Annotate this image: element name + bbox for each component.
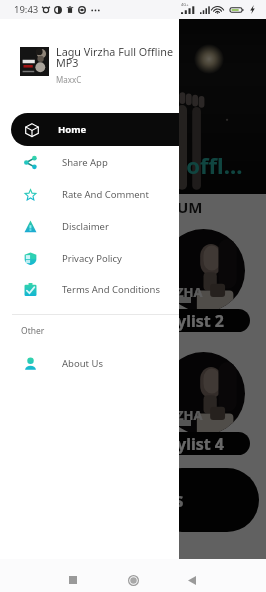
staticText: ylist 2 — [177, 310, 224, 332]
button[interactable]: Privacy Policy — [0, 243, 179, 274]
button[interactable]: Rate And Comment — [0, 179, 179, 210]
staticText: Rate And Comment — [62, 188, 149, 201]
staticText: MaxxC — [56, 74, 82, 85]
staticText: UM — [177, 197, 203, 217]
staticText: Lagu Virzha Full Offline MP3 — [56, 44, 179, 70]
staticText: Home — [58, 123, 87, 136]
staticText: Share App — [62, 156, 108, 169]
staticText: ylist 4 — [177, 433, 224, 455]
button[interactable]: Home — [11, 113, 179, 146]
staticText: Disclaimer — [62, 220, 109, 233]
staticText: ZHA — [176, 283, 203, 301]
button[interactable]: Recent apps — [58, 565, 88, 592]
staticText: s — [174, 487, 184, 513]
staticText: Terms And Conditions — [62, 283, 161, 296]
button[interactable]: Home — [118, 565, 148, 592]
button[interactable]: About Us — [0, 348, 179, 379]
staticText: Privacy Policy — [62, 252, 122, 265]
staticText: 4G+ — [181, 2, 189, 7]
button[interactable]: Back — [177, 565, 207, 592]
button[interactable]: Disclaimer — [0, 211, 179, 242]
staticText: About Us — [62, 357, 103, 370]
staticText: l offl... — [174, 150, 243, 180]
button[interactable]: Terms And Conditions — [0, 274, 179, 305]
staticText: ZHA — [176, 406, 203, 424]
button[interactable]: Share App — [0, 147, 179, 178]
staticText: 19:43 — [14, 3, 39, 16]
staticText: Other — [21, 325, 45, 337]
